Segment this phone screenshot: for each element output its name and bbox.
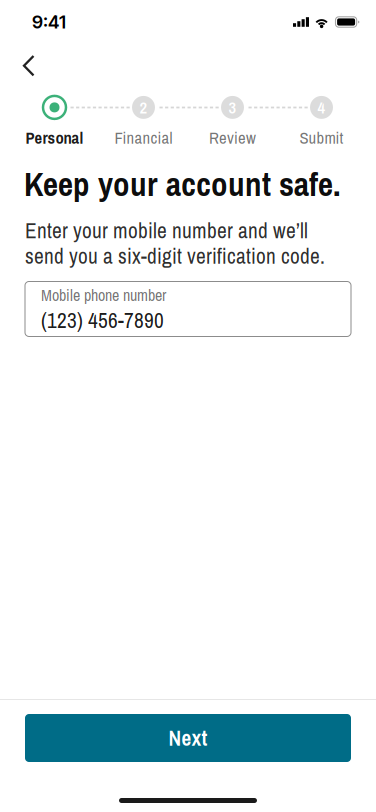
staticText: Financial bbox=[114, 126, 172, 149]
staticText: (123) 456-7890 bbox=[41, 306, 164, 335]
staticText: Keep your account safe. bbox=[24, 162, 341, 206]
staticText: Review bbox=[209, 126, 256, 149]
staticText: 4 bbox=[317, 96, 325, 119]
button[interactable]: Back bbox=[10, 47, 48, 84]
staticText: 3 bbox=[228, 96, 236, 119]
staticText: 2 bbox=[139, 96, 147, 119]
staticText: Submit bbox=[299, 126, 343, 149]
staticText: Enter your mobile number and we’ll send … bbox=[25, 216, 325, 270]
staticText: Mobile phone number bbox=[41, 284, 166, 306]
button[interactable]: Mobile phone number bbox=[25, 281, 351, 336]
staticText: Next bbox=[168, 724, 207, 752]
staticText: 9:41 bbox=[32, 11, 66, 33]
button[interactable]: Next bbox=[25, 714, 351, 762]
staticText: Personal bbox=[25, 126, 83, 149]
